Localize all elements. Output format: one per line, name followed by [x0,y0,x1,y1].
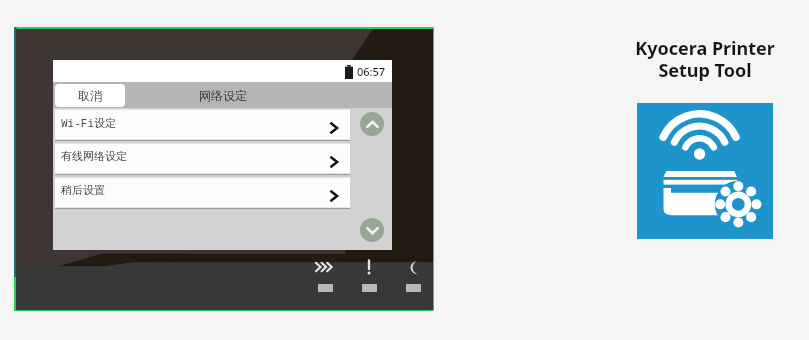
button[interactable]: Scroll up [360,112,384,136]
button[interactable]: Sleep [399,258,427,292]
staticText: 06:57 [357,64,386,79]
staticText: 网络设定 [199,88,247,103]
button[interactable]: Scroll down [360,218,384,242]
staticText: Wi-Fi设定 [61,115,116,130]
button[interactable]: Kyocera Printer Setup Tool icon [637,103,773,239]
button[interactable]: 有线网络设定 [53,142,352,176]
staticText: 取消 [78,88,102,103]
staticText: 有线网络设定 [61,149,127,163]
button[interactable]: 取消 [55,84,125,107]
button[interactable]: 稍后设置 [53,176,352,210]
staticText: 稍后设置 [61,183,105,197]
button[interactable]: Attention [355,258,383,292]
staticText: Kyocera Printer Setup Tool [635,36,775,83]
button[interactable]: Wi-Fi设定 [53,108,352,142]
button[interactable]: Go / Resume [311,258,339,292]
